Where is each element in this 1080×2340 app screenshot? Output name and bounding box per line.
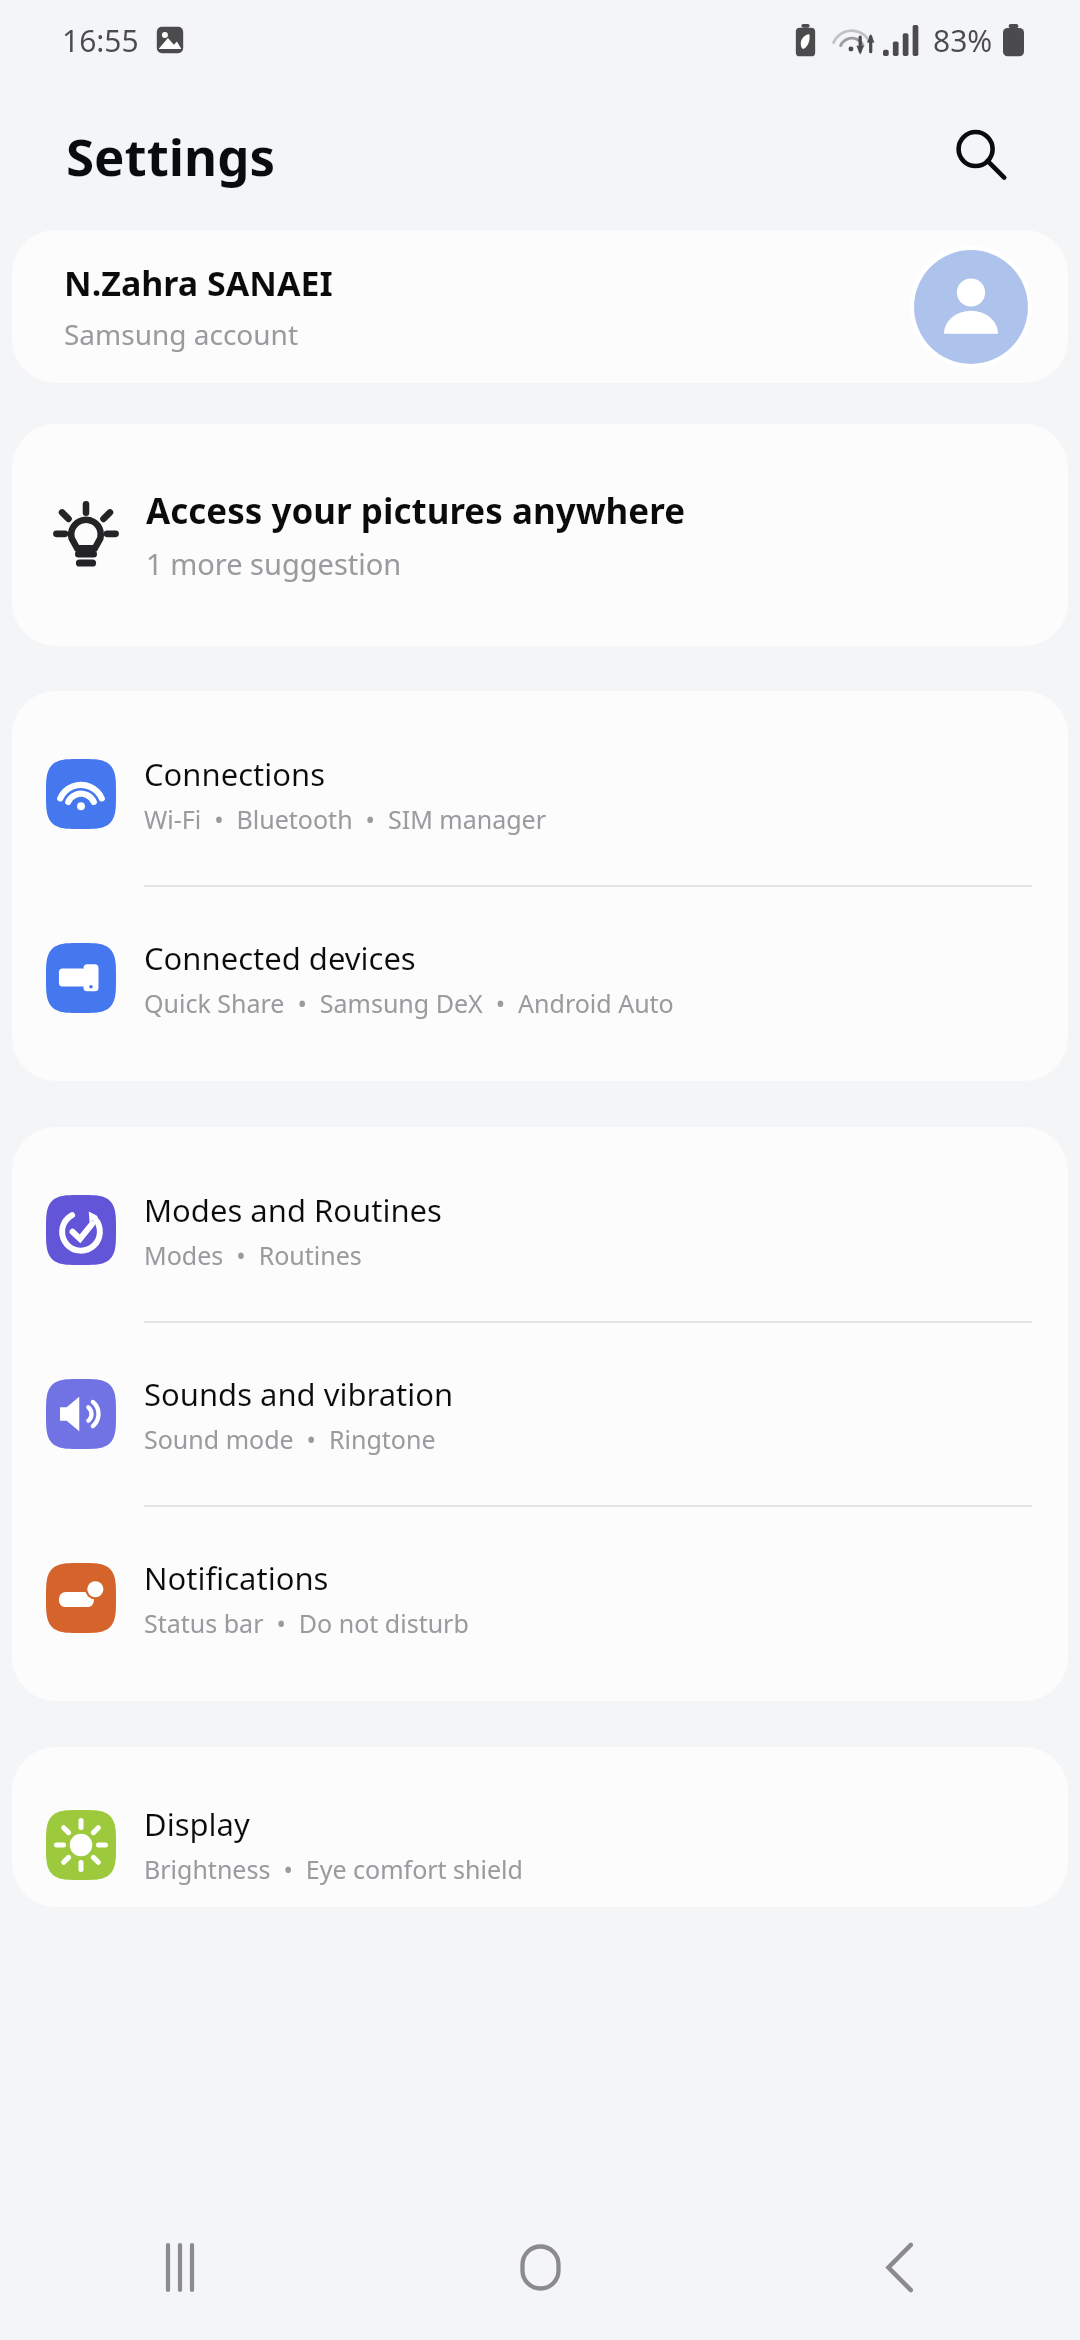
staticText: Modes • Routines <box>144 1238 362 1272</box>
staticText: 1 more suggestion <box>146 544 402 583</box>
staticText: Settings <box>66 121 276 190</box>
button[interactable]: Connected devices <box>12 887 1068 1069</box>
staticText: Modes and Routines <box>144 1189 442 1231</box>
button[interactable]: Profile picture <box>908 244 1034 370</box>
button[interactable]: Access your pictures anywhere <box>12 424 1068 646</box>
staticText: Notifications <box>144 1557 329 1599</box>
button[interactable]: Notifications <box>12 1507 1068 1689</box>
button[interactable]: Modes and Routines <box>12 1139 1068 1321</box>
staticText: Status bar • Do not disturb <box>144 1606 469 1640</box>
staticText: Connected devices <box>144 937 416 979</box>
staticText: N.Zahra SANAEI <box>64 260 333 306</box>
staticText: Display <box>144 1803 250 1845</box>
button[interactable]: Recents <box>0 2207 360 2327</box>
staticText: Wi-Fi • Bluetooth • SIM manager <box>144 802 547 836</box>
staticText: Brightness • Eye comfort shield <box>144 1852 523 1886</box>
button[interactable]: Connections <box>12 703 1068 885</box>
staticText: Connections <box>144 753 325 795</box>
button[interactable]: N.Zahra SANAEI <box>12 230 1068 383</box>
staticText: Access your pictures anywhere <box>146 487 686 535</box>
staticText: 16:55 <box>62 20 139 61</box>
button[interactable]: Back <box>720 2207 1080 2327</box>
staticText: Quick Share • Samsung DeX • Android Auto <box>144 986 674 1020</box>
staticText: 83% <box>933 20 993 61</box>
staticText: Sounds and vibration <box>144 1373 454 1415</box>
button[interactable]: Sounds and vibration <box>12 1323 1068 1505</box>
button[interactable]: Home <box>360 2207 720 2327</box>
staticText: Sound mode • Ringtone <box>144 1422 436 1456</box>
button[interactable]: Display <box>12 1747 1068 1907</box>
button[interactable]: Search <box>932 106 1030 204</box>
staticText: Samsung account <box>64 315 299 353</box>
